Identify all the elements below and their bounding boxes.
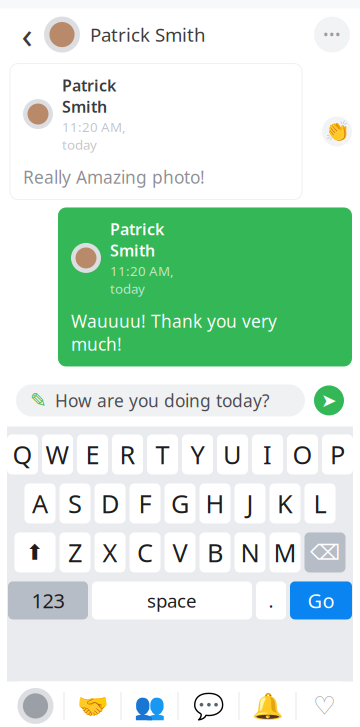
button[interactable]: M: [269, 532, 300, 572]
staticText: ♡: [313, 692, 336, 720]
staticText: Go: [307, 587, 334, 614]
button[interactable]: More options: [314, 17, 350, 53]
button[interactable]: Profile: [7, 682, 63, 727]
staticText: E: [85, 438, 99, 471]
button[interactable]: W: [42, 434, 73, 474]
staticText: K: [277, 487, 293, 520]
button[interactable]: J: [234, 483, 265, 523]
staticText: 👥: [133, 691, 165, 720]
staticText: 🤝: [76, 691, 108, 720]
button[interactable]: Q: [7, 434, 38, 474]
staticText: •••: [323, 25, 341, 44]
button[interactable]: D: [94, 483, 125, 523]
button[interactable]: V: [164, 532, 195, 572]
button[interactable]: Contacts: [121, 682, 177, 727]
button[interactable]: ⌫: [304, 532, 345, 572]
staticText: I: [263, 438, 272, 471]
button[interactable]: P: [322, 434, 353, 474]
staticText: Patrick Smith: [62, 75, 116, 117]
button[interactable]: F: [129, 483, 160, 523]
staticText: J: [246, 487, 253, 520]
button[interactable]: I: [252, 434, 283, 474]
staticText: H: [205, 487, 224, 520]
staticText: ⬆: [26, 540, 44, 564]
staticText: ➤: [321, 390, 337, 411]
staticText: Q: [12, 438, 32, 471]
button[interactable]: E: [77, 434, 108, 474]
staticText: S: [68, 487, 82, 520]
staticText: T: [155, 438, 169, 471]
staticText: V: [172, 536, 187, 569]
button[interactable]: K: [269, 483, 300, 523]
staticText: W: [45, 438, 69, 471]
button[interactable]: S: [59, 483, 90, 523]
staticText: O: [292, 438, 312, 471]
staticText: How are you doing today?: [55, 389, 270, 412]
button[interactable]: 123: [8, 581, 88, 619]
staticText: 11:20 AM, today: [62, 118, 126, 153]
button[interactable]: Z: [59, 532, 90, 572]
button[interactable]: Messages: [178, 682, 238, 727]
button[interactable]: Send: [314, 385, 344, 415]
staticText: N: [240, 536, 259, 569]
button[interactable]: U: [217, 434, 248, 474]
button[interactable]: N: [234, 532, 265, 572]
staticText: Patrick Smith: [110, 218, 164, 261]
button[interactable]: G: [164, 483, 195, 523]
staticText: 🔔: [251, 691, 283, 720]
staticText: 11:20 AM, today: [110, 262, 174, 297]
button[interactable]: R: [112, 434, 143, 474]
button[interactable]: Deals: [64, 682, 120, 727]
staticText: space: [147, 588, 197, 613]
staticText: U: [223, 438, 242, 471]
button[interactable]: Back: [10, 13, 44, 57]
staticText: Patrick Smith: [90, 22, 206, 47]
button[interactable]: X: [94, 532, 125, 572]
staticText: Z: [68, 536, 82, 569]
button[interactable]: H: [199, 483, 230, 523]
staticText: ✎: [30, 389, 47, 412]
staticText: G: [171, 487, 189, 520]
staticText: R: [119, 438, 135, 471]
button[interactable]: React: [322, 116, 352, 146]
button[interactable]: B: [199, 532, 230, 572]
staticText: L: [313, 487, 326, 520]
button[interactable]: Y: [182, 434, 213, 474]
staticText: ‹: [21, 11, 32, 58]
button[interactable]: Favorites: [296, 682, 352, 727]
staticText: 💬: [192, 691, 224, 720]
staticText: B: [207, 536, 223, 569]
staticText: Really Amazing photo!: [23, 165, 205, 188]
button[interactable]: .: [256, 581, 286, 619]
staticText: M: [273, 536, 296, 569]
staticText: Y: [190, 438, 204, 471]
staticText: C: [137, 536, 153, 569]
staticText: A: [32, 487, 48, 520]
staticText: P: [330, 438, 345, 471]
staticText: Wauuuu! Thank you very much!: [71, 309, 277, 355]
staticText: X: [102, 536, 117, 569]
button[interactable]: L: [304, 483, 335, 523]
button[interactable]: O: [287, 434, 318, 474]
staticText: D: [101, 487, 119, 520]
staticText: F: [138, 487, 151, 520]
button[interactable]: space: [92, 581, 252, 619]
staticText: 123: [31, 587, 64, 614]
button[interactable]: A: [24, 483, 55, 523]
button[interactable]: C: [129, 532, 160, 572]
staticText: ⌫: [310, 540, 340, 564]
staticText: .: [268, 588, 273, 613]
button[interactable]: ⬆: [14, 532, 55, 572]
staticText: 👏: [324, 120, 349, 143]
button[interactable]: Go: [290, 581, 352, 619]
button[interactable]: Notifications: [239, 682, 295, 727]
button[interactable]: T: [147, 434, 178, 474]
